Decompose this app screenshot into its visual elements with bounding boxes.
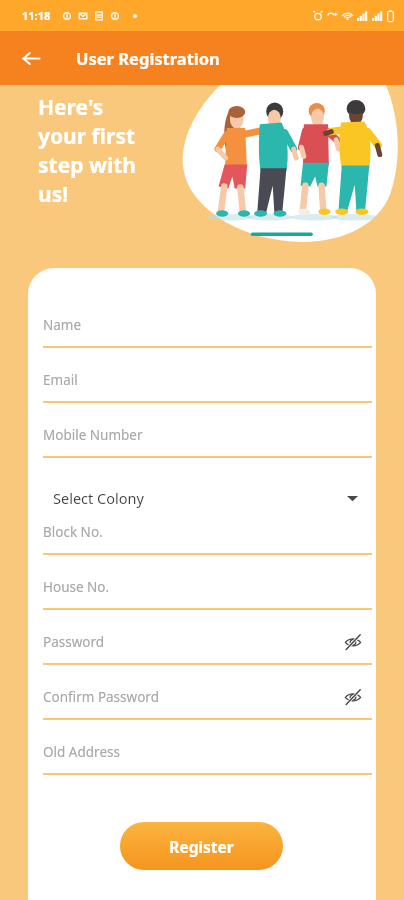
button[interactable]: Block No. <box>43 519 374 574</box>
button[interactable]: Toggle password visibility <box>342 686 364 708</box>
other: Open colony list <box>342 488 362 508</box>
button[interactable]: House No. <box>43 574 374 629</box>
staticText: User Registration <box>76 47 220 69</box>
staticText: your first <box>38 122 136 151</box>
staticText: Name <box>43 316 82 334</box>
staticText: Old Address <box>43 743 120 761</box>
staticText: Mobile Number <box>43 426 143 444</box>
button[interactable]: Name <box>43 312 374 367</box>
button[interactable]: Email <box>43 367 374 422</box>
staticText: Select Colony <box>53 488 144 508</box>
staticText: Password <box>43 633 105 651</box>
button[interactable]: Back <box>12 39 50 77</box>
button[interactable]: Password <box>43 629 374 684</box>
button[interactable]: Confirm Password <box>43 684 374 739</box>
staticText: Confirm Password <box>43 688 159 706</box>
staticText: House No. <box>43 578 110 596</box>
button[interactable]: Old Address <box>43 739 374 794</box>
staticText: Register <box>169 836 234 857</box>
button[interactable]: Mobile Number <box>43 422 374 477</box>
staticText: Block No. <box>43 523 103 541</box>
staticText: Email <box>43 371 78 389</box>
staticText: step with <box>38 151 136 180</box>
staticText: Here's <box>38 93 104 122</box>
button[interactable]: Toggle password visibility <box>342 631 364 653</box>
staticText: us! <box>38 180 69 209</box>
button[interactable]: Select Colony <box>43 477 374 519</box>
button[interactable]: Register <box>120 822 283 870</box>
staticText: 11:18 <box>22 8 51 23</box>
